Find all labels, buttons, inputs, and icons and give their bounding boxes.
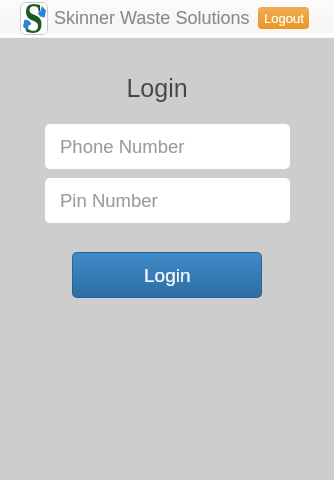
other: Skinner Waste Solutions logo <box>20 2 48 35</box>
button[interactable]: Login <box>73 253 261 297</box>
button[interactable]: Logout <box>258 7 309 29</box>
button[interactable]: Pin Number <box>45 178 290 223</box>
staticText: Pin Number <box>60 190 158 211</box>
staticText: Login <box>0 74 324 102</box>
button[interactable]: Phone Number <box>45 124 290 169</box>
staticText: Skinner Waste Solutions <box>54 8 250 28</box>
staticText: Logout <box>264 11 304 26</box>
staticText: Login <box>144 265 191 286</box>
staticText: Phone Number <box>60 136 185 157</box>
staticText: S <box>24 2 44 35</box>
